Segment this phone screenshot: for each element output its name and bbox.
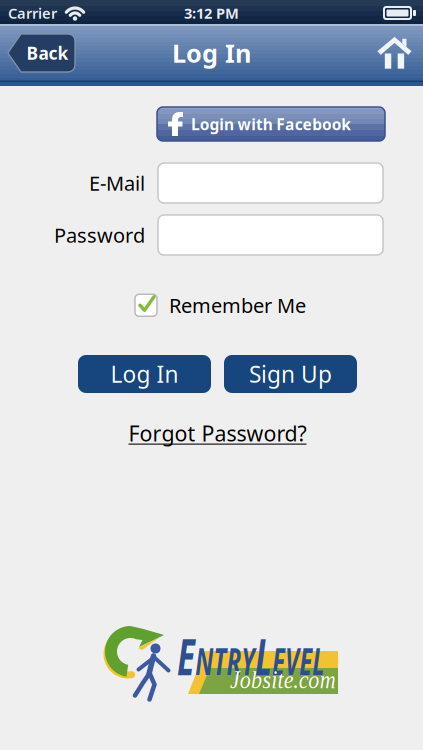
staticText: E-Mail — [89, 170, 145, 196]
button[interactable]: Log In — [78, 355, 211, 393]
button[interactable]: Login with Facebook — [157, 107, 385, 141]
staticText: Jobsite.com — [230, 666, 350, 694]
staticText: Back — [26, 41, 68, 64]
staticText: Carrier — [8, 3, 57, 23]
staticText: EVEL — [323, 636, 404, 686]
button[interactable]: Forgot Password? — [128, 419, 306, 447]
button[interactable] — [158, 163, 383, 203]
button[interactable]: Back — [7, 33, 75, 73]
staticText: NTRY — [205, 636, 297, 686]
staticText: L — [297, 621, 323, 690]
staticText: Login with Facebook — [191, 113, 356, 135]
staticText: Forgot Password? — [128, 419, 306, 447]
button[interactable] — [158, 215, 383, 255]
staticText: Sign Up — [249, 359, 332, 389]
staticText: 3:12 PM — [184, 3, 239, 23]
staticText: Password — [54, 222, 145, 248]
button[interactable] — [377, 36, 415, 72]
button[interactable]: Remember Me — [135, 292, 306, 319]
staticText: Remember Me — [169, 292, 306, 319]
staticText: Log In — [110, 359, 178, 389]
staticText: E — [177, 621, 205, 690]
staticText: Log In — [172, 36, 251, 70]
button[interactable]: Sign Up — [224, 355, 357, 393]
